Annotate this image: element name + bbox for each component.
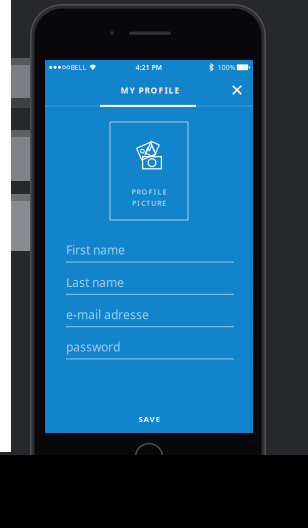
- button[interactable]: Profile picture: [110, 122, 188, 220]
- staticText: password: [66, 339, 120, 355]
- staticText: Last name: [66, 274, 124, 290]
- staticText: BELL: [70, 63, 86, 72]
- button[interactable]: e-mail adresse: [66, 303, 234, 327]
- staticText: S A V E: [138, 414, 159, 424]
- staticText: 4:21 PM: [135, 63, 161, 72]
- staticText: M Y P R O F I L E: [120, 85, 179, 96]
- button[interactable]: password: [66, 335, 234, 359]
- staticText: P R O F I L E: [131, 187, 166, 197]
- button[interactable]: First name: [66, 238, 234, 262]
- staticText: First name: [66, 242, 125, 258]
- staticText: P I C T U R E: [132, 198, 166, 208]
- button[interactable]: Last name: [66, 270, 234, 294]
- staticText: 100%: [217, 63, 235, 72]
- button[interactable]: S A V E: [45, 402, 253, 436]
- button[interactable]: Close: [222, 75, 252, 105]
- button[interactable]: M Y P R O F I L E: [90, 74, 210, 106]
- staticText: e-mail adresse: [66, 306, 149, 323]
